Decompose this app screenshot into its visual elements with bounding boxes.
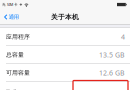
staticText: 无 SIM 卡	[2, 2, 18, 7]
button[interactable]: 歌曲	[0, 82, 130, 90]
button[interactable]: 总容量	[0, 46, 130, 63]
staticText: 4	[121, 32, 125, 41]
button[interactable]: 可用容量	[0, 64, 130, 81]
staticText: 可用容量	[6, 69, 30, 76]
staticText: 关于本机	[51, 13, 79, 21]
staticText: 通用	[9, 14, 19, 20]
staticText: 应用程序	[6, 33, 30, 40]
button[interactable]: 通用	[0, 9, 22, 25]
staticText: 12.6 GB	[99, 68, 125, 77]
staticText: 13.5 GB	[99, 50, 125, 59]
staticText: 歌曲	[6, 89, 18, 90]
button[interactable]: 应用程序	[0, 28, 130, 45]
staticText: 总容量	[6, 51, 24, 58]
